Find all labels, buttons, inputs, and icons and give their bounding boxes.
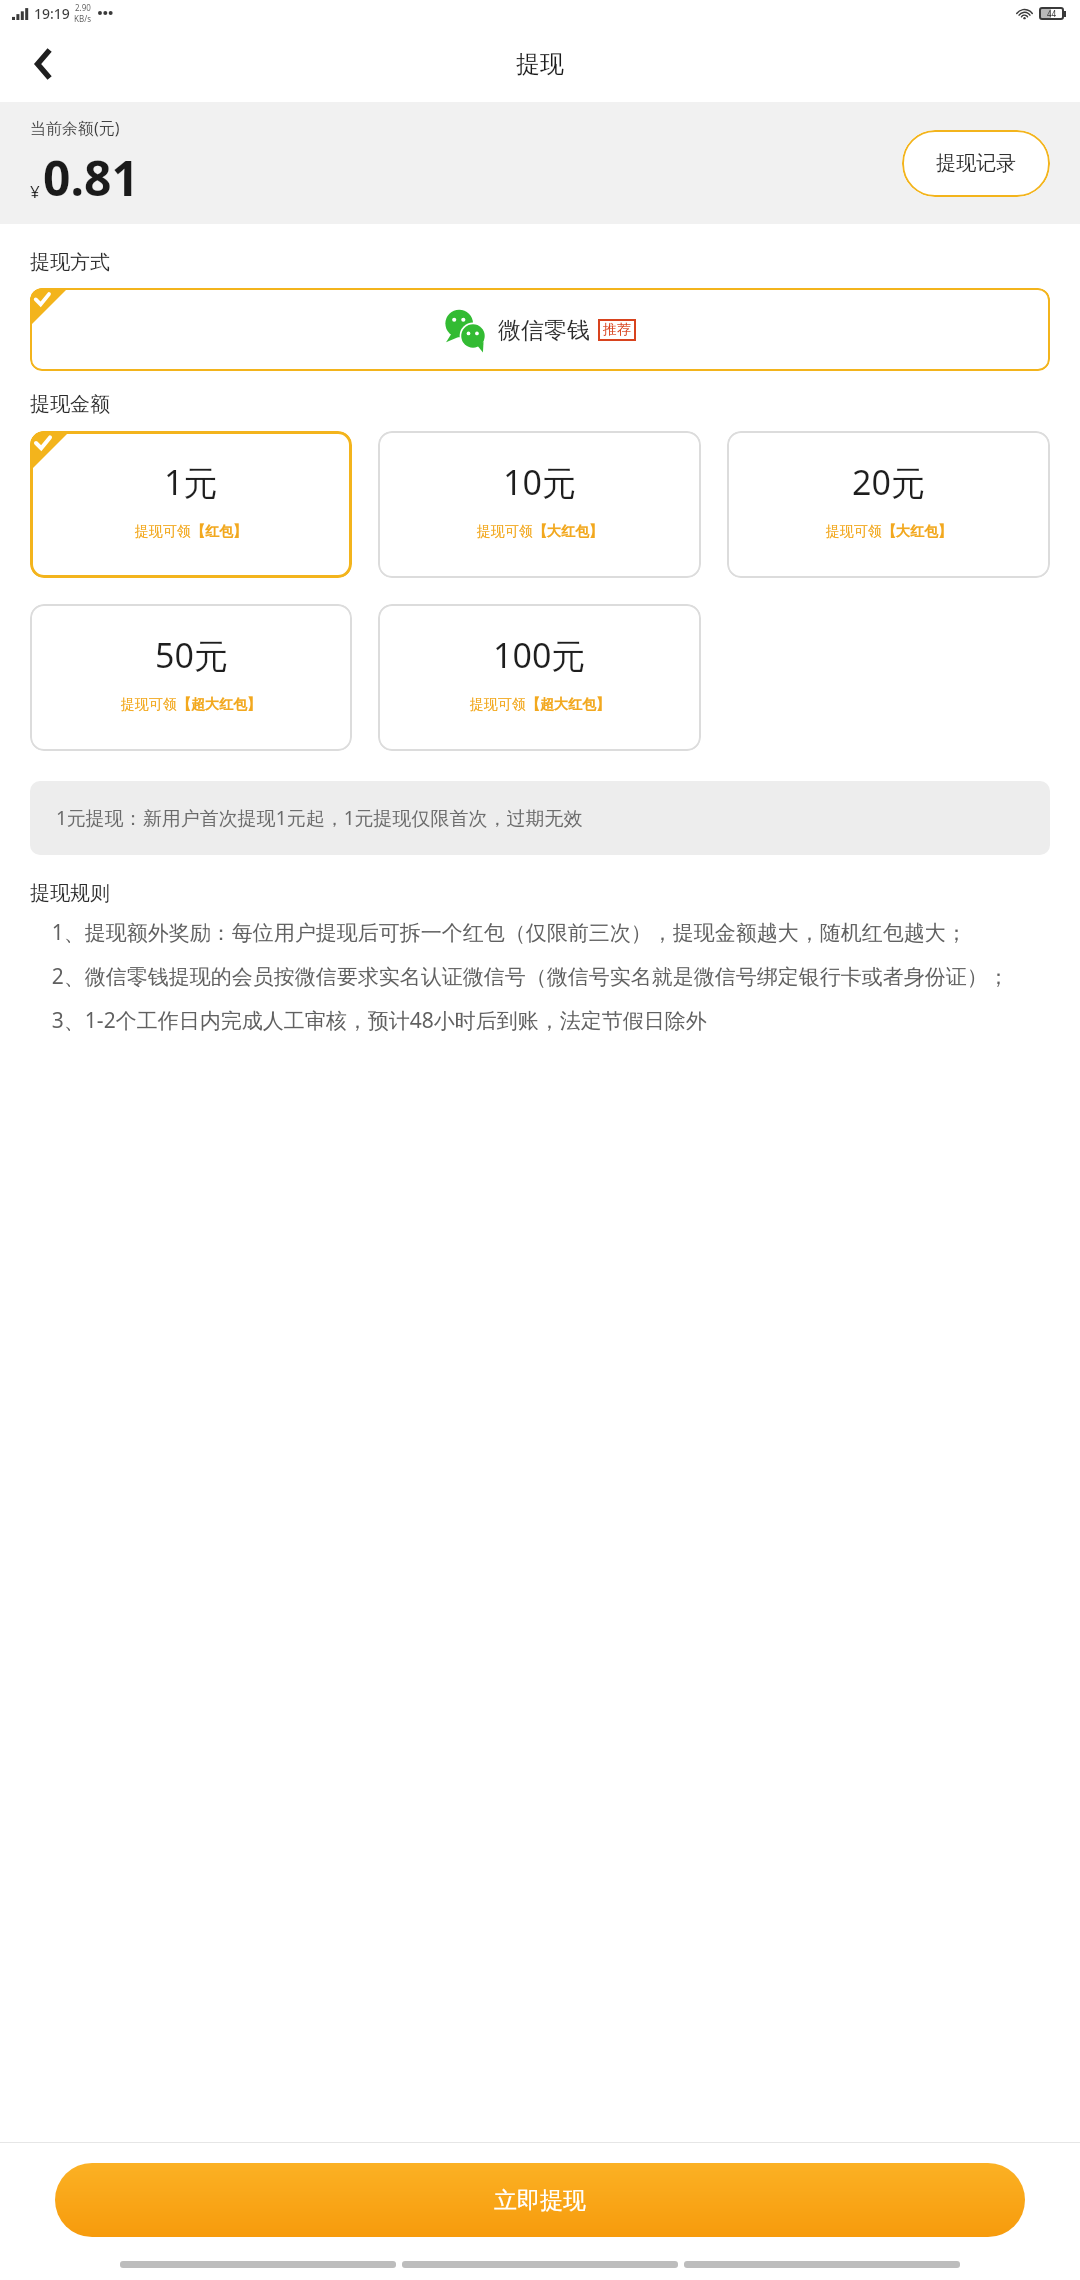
staticText: 19:19	[34, 4, 70, 23]
staticText: KB/s	[74, 13, 91, 24]
staticText: 立即提现	[494, 2186, 586, 2215]
button[interactable]: 立即提现	[55, 2163, 1025, 2237]
staticText: 44	[1047, 8, 1057, 19]
staticText: 20元	[852, 459, 925, 505]
staticText: 10元	[503, 459, 576, 505]
button[interactable]: 100元	[378, 604, 701, 751]
staticText: 提现可领【超大红包】	[470, 696, 610, 714]
staticText: 提现可领【大红包】	[477, 523, 603, 541]
staticText: 提现	[516, 49, 564, 79]
staticText: 2.90	[75, 2, 91, 13]
button[interactable]: 10元	[378, 431, 701, 578]
staticText: 提现可领【红包】	[135, 523, 247, 541]
staticText: 1元提现：新用户首次提现1元起，1元提现仅限首次，过期无效	[56, 805, 1024, 831]
staticText: ¥	[30, 180, 40, 203]
button[interactable]: 返回	[22, 42, 66, 86]
button[interactable]: 微信零钱	[30, 288, 1050, 371]
staticText: 提现可领【超大红包】	[121, 696, 261, 714]
staticText: 100元	[493, 632, 586, 678]
staticText: 提现规则	[30, 881, 110, 906]
staticText: 提现可领【大红包】	[826, 523, 952, 541]
button[interactable]: 50元	[30, 604, 352, 751]
staticText: 提现方式	[30, 250, 110, 275]
staticText: 0.81	[43, 145, 139, 210]
staticText: 1元	[164, 459, 218, 505]
button[interactable]: 20元	[727, 431, 1050, 578]
staticText: 提现金额	[30, 392, 110, 417]
staticText: 提现记录	[936, 151, 1016, 176]
staticText: 1、提现额外奖励：每位用户提现后可拆一个红包（仅限前三次），提现金额越大，随机红…	[30, 918, 1050, 1034]
staticText: 50元	[155, 632, 228, 678]
staticText: 微信零钱	[498, 316, 590, 345]
staticText: 当前余额(元)	[30, 117, 120, 139]
staticText: 推荐	[603, 321, 631, 339]
button[interactable]: 提现记录	[902, 130, 1050, 197]
button[interactable]: 1元	[30, 431, 352, 578]
